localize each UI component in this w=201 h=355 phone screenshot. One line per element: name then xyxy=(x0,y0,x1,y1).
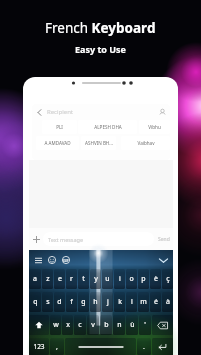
button[interactable]: ASHVIN BH... xyxy=(81,136,116,150)
button[interactable]: GIF xyxy=(60,254,72,266)
staticText: b xyxy=(104,320,109,330)
button[interactable]: q xyxy=(29,292,41,312)
staticText: Send xyxy=(158,236,170,243)
staticText: , xyxy=(56,342,58,352)
button[interactable]: PLI xyxy=(42,120,77,134)
button[interactable]: z xyxy=(42,269,53,289)
button[interactable]: n xyxy=(113,315,125,335)
staticText: p xyxy=(141,274,146,284)
button[interactable]: Space xyxy=(65,338,136,355)
button[interactable]: w xyxy=(50,315,61,335)
button[interactable]: Emoji xyxy=(46,254,58,266)
staticText: i xyxy=(119,274,121,284)
button[interactable]: u xyxy=(102,269,113,289)
staticText: c xyxy=(78,320,82,330)
button[interactable]: ALPESH DHA xyxy=(78,120,137,134)
staticText: w xyxy=(53,320,59,330)
staticText: PLI xyxy=(56,124,63,130)
staticText: ASHVIN BH... xyxy=(85,140,113,146)
button[interactable]: ç xyxy=(162,269,173,289)
button[interactable]: ' xyxy=(139,315,151,335)
button[interactable]: Shift xyxy=(29,315,49,335)
button[interactable]: 123 xyxy=(29,338,49,355)
staticText: g xyxy=(81,297,86,307)
staticText: o xyxy=(129,274,134,284)
button[interactable]: Contacts xyxy=(158,108,167,117)
staticText: Text message xyxy=(48,236,84,243)
button[interactable]: é xyxy=(150,292,161,312)
staticText: ALPESH DHA xyxy=(94,124,122,130)
button[interactable]: m xyxy=(138,292,149,312)
button[interactable]: s xyxy=(42,292,53,312)
staticText: q xyxy=(33,297,38,307)
staticText: à xyxy=(166,297,170,307)
button[interactable]: r xyxy=(66,269,77,289)
staticText: Vaibhav xyxy=(137,140,155,146)
staticText: Easy to Use xyxy=(75,43,126,55)
button[interactable]: v xyxy=(87,315,99,335)
button[interactable]: o xyxy=(126,269,137,289)
button[interactable]: Vibhu xyxy=(139,120,170,134)
button[interactable]: Attach xyxy=(29,232,43,246)
staticText: Vibhu xyxy=(148,124,161,130)
staticText: h xyxy=(93,297,98,307)
staticText: l xyxy=(131,297,133,307)
button[interactable]: A AMDAVAD xyxy=(36,136,79,150)
button[interactable]: ù xyxy=(126,315,138,335)
staticText: è xyxy=(154,274,158,284)
button[interactable]: , xyxy=(50,338,64,355)
button[interactable]: f xyxy=(66,292,77,312)
staticText: k xyxy=(118,297,122,307)
button[interactable]: Backspace xyxy=(152,315,173,335)
button[interactable]: a xyxy=(29,269,41,289)
button[interactable]: l xyxy=(126,292,137,312)
button[interactable]: Vaibhav xyxy=(121,136,170,150)
staticText: ù xyxy=(130,320,135,330)
button[interactable]: Text message xyxy=(43,232,154,246)
staticText: v xyxy=(91,320,95,330)
staticText: 123 xyxy=(33,342,45,351)
staticText: t xyxy=(82,274,85,284)
staticText: French Keyboard xyxy=(45,19,156,37)
button[interactable]: e xyxy=(54,269,65,289)
button[interactable]: t xyxy=(78,269,89,289)
staticText: j xyxy=(107,297,109,307)
button[interactable]: Enter xyxy=(152,338,173,355)
button[interactable]: Menu xyxy=(32,254,44,266)
button[interactable]: k xyxy=(114,292,125,312)
button[interactable]: d xyxy=(54,292,65,312)
button[interactable]: y xyxy=(90,269,101,289)
staticText: y xyxy=(94,274,98,284)
staticText: Recipient xyxy=(47,108,74,116)
staticText: e xyxy=(58,274,62,284)
staticText: s xyxy=(46,297,50,307)
button[interactable]: b xyxy=(100,315,112,335)
staticText: d xyxy=(57,297,62,307)
staticText: m xyxy=(140,297,147,307)
button[interactable]: Hide keyboard xyxy=(156,253,170,267)
staticText: ç xyxy=(166,274,170,284)
staticText: ' xyxy=(144,320,146,330)
button[interactable]: g xyxy=(78,292,89,312)
staticText: z xyxy=(46,274,50,284)
staticText: GIF xyxy=(63,258,69,263)
button[interactable]: x xyxy=(62,315,73,335)
staticText: u xyxy=(105,274,110,284)
button[interactable]: è xyxy=(150,269,161,289)
staticText: f xyxy=(70,297,73,307)
button[interactable]: à xyxy=(162,292,173,312)
button[interactable]: j xyxy=(102,292,113,312)
button[interactable]: . xyxy=(137,338,151,355)
staticText: é xyxy=(154,297,158,307)
button[interactable]: c xyxy=(74,315,86,335)
staticText: A AMDAVAD xyxy=(44,140,71,146)
button[interactable]: Recipient xyxy=(32,104,170,120)
button[interactable]: p xyxy=(138,269,149,289)
staticText: n xyxy=(117,320,122,330)
button[interactable]: i xyxy=(114,269,125,289)
staticText: r xyxy=(70,274,73,284)
button[interactable]: Send xyxy=(154,228,173,250)
staticText: . xyxy=(143,342,145,352)
staticText: a xyxy=(33,274,37,284)
button[interactable]: h xyxy=(90,292,101,312)
